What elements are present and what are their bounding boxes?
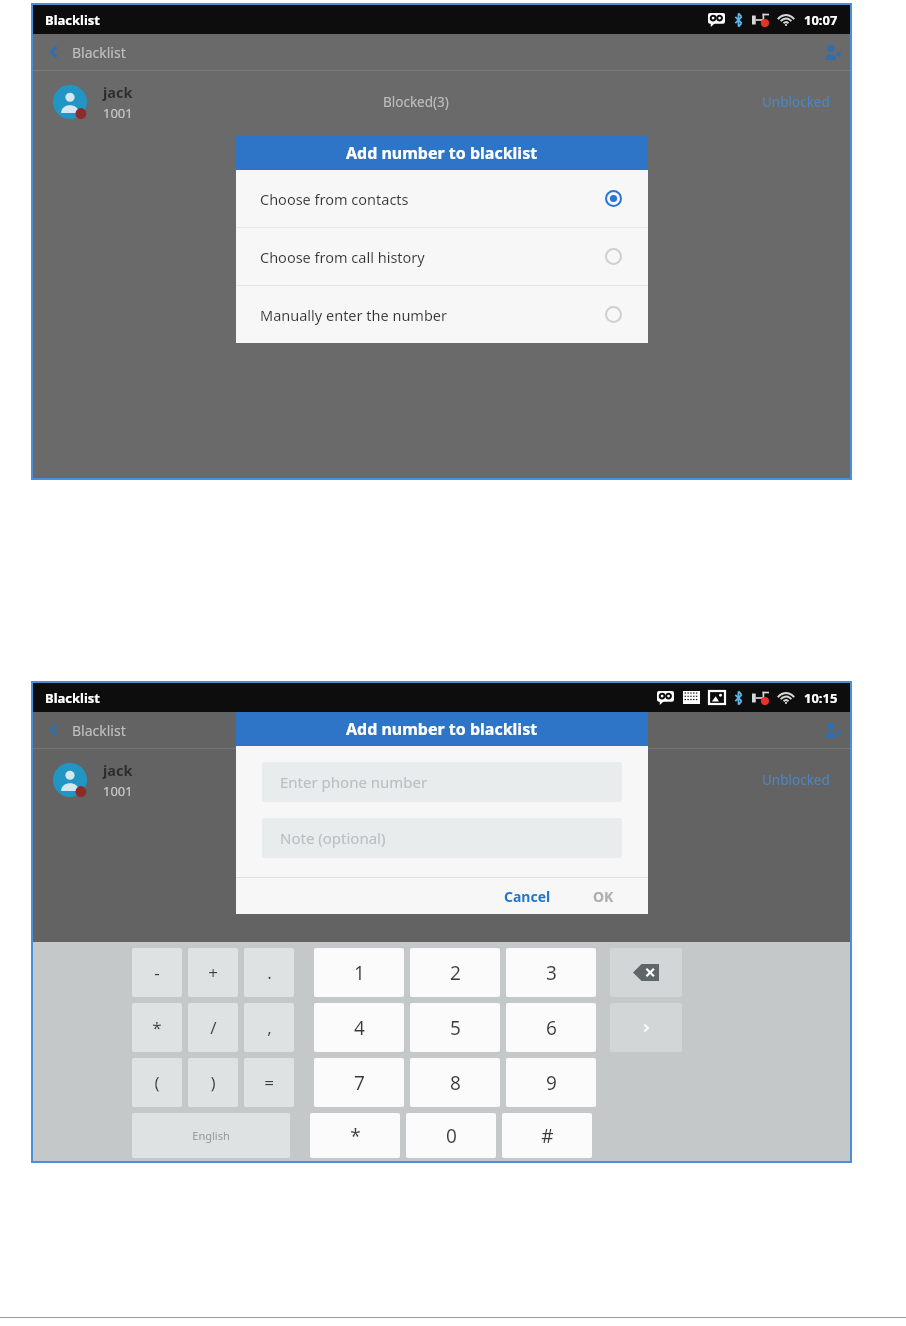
- button[interactable]: ): [188, 1058, 238, 1107]
- button[interactable]: 9: [506, 1058, 596, 1107]
- button[interactable]: 8: [410, 1058, 500, 1107]
- staticText: (: [154, 1071, 160, 1094]
- staticText: 4: [354, 1015, 365, 1041]
- button[interactable]: jack: [33, 749, 850, 811]
- button[interactable]: Unblocked: [762, 93, 830, 111]
- button[interactable]: 0: [406, 1113, 496, 1158]
- button[interactable]: +: [188, 948, 238, 997]
- button[interactable]: Add contact: [814, 34, 850, 70]
- staticText: =: [264, 1071, 274, 1094]
- button[interactable]: 6: [506, 1003, 596, 1052]
- button[interactable]: *: [310, 1113, 400, 1158]
- staticText: OK: [593, 887, 614, 906]
- staticText: 6: [546, 1015, 557, 1041]
- button[interactable]: Unblocked: [762, 771, 830, 789]
- staticText: -: [154, 961, 160, 984]
- button[interactable]: (: [132, 1058, 182, 1107]
- staticText: Choose from contacts: [260, 189, 409, 209]
- staticText: #: [541, 1123, 554, 1149]
- button[interactable]: Back: [33, 34, 134, 70]
- button[interactable]: Enter phone number: [262, 762, 622, 802]
- staticText: 1001: [103, 782, 133, 800]
- staticText: Unblocked: [762, 93, 830, 111]
- staticText: Choose from call history: [260, 247, 425, 267]
- other: Back: [47, 723, 61, 737]
- button[interactable]: Note (optional): [262, 818, 622, 858]
- staticText: .: [267, 961, 272, 984]
- staticText: Blacklist: [45, 11, 101, 29]
- button[interactable]: #: [502, 1113, 592, 1158]
- button[interactable]: 5: [410, 1003, 500, 1052]
- button[interactable]: Choose from contacts: [236, 170, 648, 227]
- staticText: Blacklist: [72, 43, 126, 62]
- button[interactable]: jack: [33, 71, 850, 133]
- staticText: 9: [546, 1070, 557, 1096]
- button[interactable]: /: [188, 1003, 238, 1052]
- button[interactable]: =: [244, 1058, 294, 1107]
- button[interactable]: ,: [244, 1003, 294, 1052]
- staticText: /: [210, 1016, 217, 1039]
- staticText: 3: [546, 960, 557, 986]
- button[interactable]: Choose from call history: [236, 228, 648, 285]
- staticText: ,: [267, 1016, 272, 1039]
- staticText: 10:15: [804, 689, 838, 707]
- staticText: Unblocked: [762, 771, 830, 789]
- button[interactable]: *: [132, 1003, 182, 1052]
- staticText: +: [208, 961, 218, 984]
- staticText: 1001: [103, 104, 133, 122]
- staticText: ): [210, 1071, 216, 1094]
- button[interactable]: Back: [33, 712, 134, 748]
- staticText: 2: [450, 960, 461, 986]
- button[interactable]: -: [132, 948, 182, 997]
- staticText: 7: [354, 1070, 365, 1096]
- staticText: 1: [354, 960, 365, 986]
- staticText: Add number to blacklist: [346, 718, 538, 740]
- button[interactable]: Delete: [610, 948, 682, 997]
- staticText: *: [152, 1016, 162, 1039]
- staticText: Blocked(3): [383, 93, 449, 111]
- button[interactable]: Add contact: [814, 712, 850, 748]
- staticText: Blacklist: [45, 689, 101, 707]
- staticText: 10:07: [804, 11, 838, 29]
- button[interactable]: 7: [314, 1058, 404, 1107]
- staticText: Manually enter the number: [260, 305, 448, 325]
- staticText: jack: [103, 82, 133, 102]
- staticText: *: [350, 1123, 361, 1149]
- staticText: Enter phone number: [280, 772, 428, 792]
- staticText: 0: [446, 1123, 457, 1149]
- button[interactable]: 3: [506, 948, 596, 997]
- staticText: English: [192, 1128, 230, 1143]
- button[interactable]: 2: [410, 948, 500, 997]
- staticText: Blacklist: [72, 721, 126, 740]
- button[interactable]: Cancel: [496, 887, 559, 906]
- staticText: 8: [450, 1070, 461, 1096]
- staticText: Cancel: [504, 887, 551, 906]
- button[interactable]: OK: [585, 887, 622, 906]
- staticText: jack: [103, 760, 133, 780]
- button[interactable]: 4: [314, 1003, 404, 1052]
- button[interactable]: English: [132, 1113, 290, 1158]
- button[interactable]: 1: [314, 948, 404, 997]
- staticText: Blocked(3): [383, 771, 449, 789]
- staticText: Note (optional): [280, 828, 386, 848]
- staticText: 5: [450, 1015, 461, 1041]
- staticText: Add number to blacklist: [346, 142, 538, 164]
- other: Back: [47, 45, 61, 59]
- button[interactable]: .: [244, 948, 294, 997]
- button[interactable]: Manually enter the number: [236, 286, 648, 343]
